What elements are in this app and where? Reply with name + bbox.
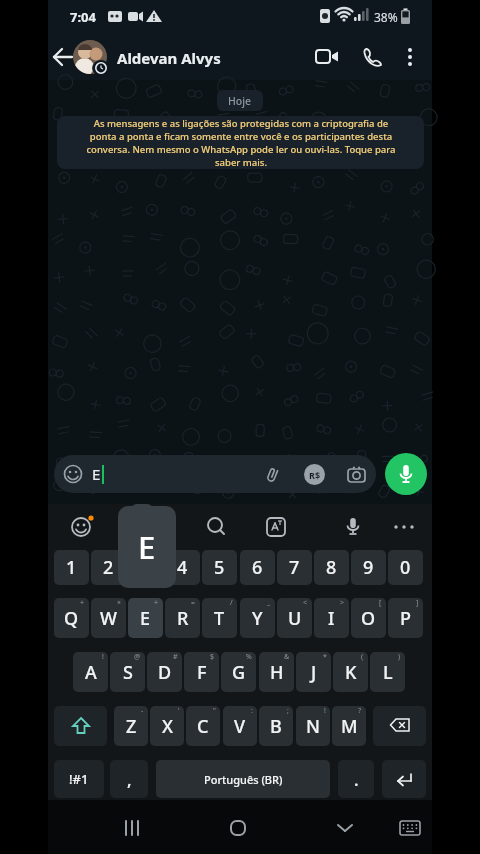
button[interactable]: * [296, 652, 331, 692]
button[interactable]: ) [370, 652, 405, 692]
button[interactable]: 6 [240, 550, 275, 585]
button[interactable]: 9 [351, 550, 386, 585]
button[interactable]: Hoje [217, 90, 263, 111]
button[interactable] [340, 514, 366, 540]
button[interactable] [394, 812, 426, 844]
staticText: / [230, 598, 233, 608]
staticText: R [177, 606, 189, 631]
staticText: 5 [214, 555, 225, 580]
button[interactable]: ! [73, 652, 108, 692]
button[interactable]: : [223, 706, 257, 746]
staticText: M [341, 714, 358, 739]
staticText: 1 [66, 555, 77, 580]
staticText: < [303, 598, 308, 608]
button[interactable]: 1 [54, 550, 89, 585]
staticText: K [345, 660, 357, 685]
staticText: : [251, 706, 253, 716]
button[interactable]: ! [296, 706, 330, 746]
button[interactable]: $ [184, 652, 219, 692]
staticText: V [234, 714, 246, 739]
staticText: + [154, 598, 159, 608]
staticText: $ [210, 652, 215, 662]
staticText: G [232, 660, 246, 685]
button[interactable]: # [147, 652, 182, 692]
button[interactable] [54, 706, 107, 746]
button[interactable] [373, 706, 426, 746]
staticText: ? [358, 706, 362, 716]
button[interactable] [382, 760, 426, 798]
button[interactable]: × [91, 598, 126, 638]
button[interactable] [73, 40, 107, 74]
button[interactable]: ; [259, 706, 293, 746]
button[interactable] [68, 512, 96, 540]
button[interactable] [385, 453, 427, 495]
staticText: [ [379, 598, 382, 608]
button[interactable]: As mensagens e as ligações são protegida… [57, 116, 424, 169]
staticText: R$ [309, 469, 321, 481]
button[interactable]: " [186, 706, 220, 746]
button[interactable] [313, 45, 341, 69]
staticText: L [383, 660, 393, 685]
button[interactable]: & [259, 652, 294, 692]
button[interactable]: < [277, 598, 312, 638]
button[interactable]: 0 [388, 550, 423, 585]
staticText: = [191, 598, 196, 608]
button[interactable]: / [202, 598, 237, 638]
staticText: H [270, 660, 284, 685]
staticText: ! [102, 652, 104, 662]
button[interactable]: 4 [165, 550, 200, 585]
button[interactable] [50, 44, 76, 70]
staticText: B [270, 714, 282, 739]
staticText: T [214, 606, 225, 631]
button[interactable]: . [338, 760, 374, 798]
button[interactable]: _ [240, 598, 275, 638]
staticText: # [173, 652, 178, 662]
button[interactable]: + [128, 598, 163, 638]
staticText: Português (BR) [204, 772, 283, 787]
button[interactable]: 3 [128, 550, 163, 585]
button[interactable]: , [110, 760, 148, 798]
staticText: 7:04 [70, 8, 96, 26]
button[interactable]: > [314, 598, 349, 638]
staticText: N [306, 714, 320, 739]
staticText: ( [361, 652, 364, 662]
staticText: C [197, 714, 209, 739]
button[interactable] [401, 44, 419, 70]
button[interactable] [114, 810, 150, 846]
button[interactable]: !#1 [54, 760, 104, 798]
button[interactable]: % [221, 652, 256, 692]
staticText: !#1 [69, 770, 89, 788]
button[interactable]: ? [332, 706, 366, 746]
button[interactable]: E [54, 455, 376, 493]
button[interactable]: [ [351, 598, 386, 638]
button[interactable] [327, 810, 363, 846]
button[interactable]: ] [388, 598, 423, 638]
staticText: E [92, 464, 101, 484]
button[interactable]: Português (BR) [156, 760, 330, 798]
staticText: 2 [103, 555, 114, 580]
button[interactable] [390, 514, 418, 540]
button[interactable]: 2 [91, 550, 126, 585]
staticText: " [213, 706, 216, 716]
button[interactable]: @ [110, 652, 145, 692]
button[interactable]: 5 [202, 550, 237, 585]
button[interactable] [360, 45, 384, 69]
button[interactable]: + [54, 598, 89, 638]
staticText: E [138, 526, 156, 568]
staticText: E [140, 606, 151, 631]
staticText: 3 [140, 555, 151, 580]
button[interactable] [220, 810, 256, 846]
button[interactable]: = [165, 598, 200, 638]
button[interactable]: ' [150, 706, 184, 746]
button[interactable]: 7 [277, 550, 312, 585]
button[interactable] [203, 514, 229, 540]
staticText: I [328, 606, 335, 631]
staticText: 6 [252, 555, 263, 580]
button[interactable]: - [114, 706, 148, 746]
staticText: & [284, 652, 290, 662]
staticText: F [197, 660, 207, 685]
button[interactable]: 8 [314, 550, 349, 585]
button[interactable]: ( [333, 652, 368, 692]
button[interactable] [263, 514, 289, 540]
staticText: D [158, 660, 172, 685]
